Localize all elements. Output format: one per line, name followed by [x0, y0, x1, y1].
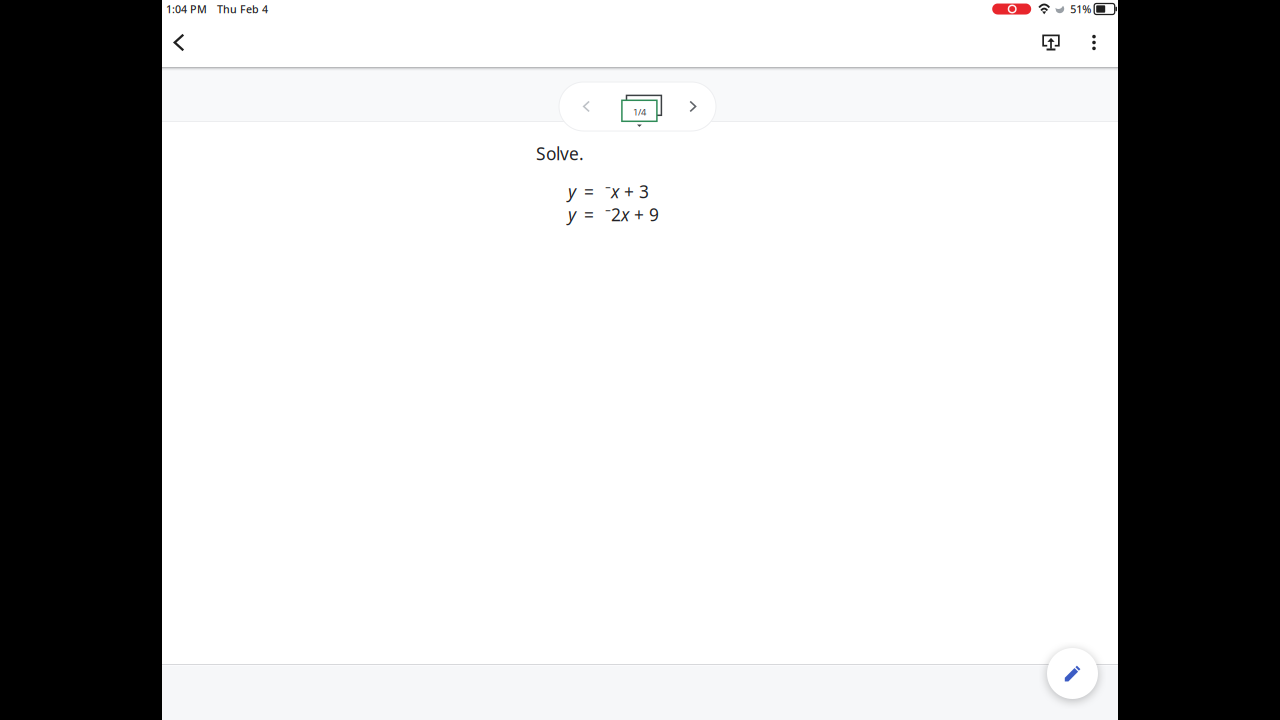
button[interactable]: Present on another screen: [1027, 18, 1075, 67]
button[interactable]: Edit: [1047, 648, 1098, 699]
button[interactable]: Previous slide: [559, 82, 614, 131]
staticText: Solve.: [536, 142, 584, 165]
staticText: 1/4: [633, 106, 646, 118]
staticText: 51%: [1070, 2, 1091, 16]
staticText: 1:04 PM: [166, 2, 207, 16]
button[interactable]: Slide 1 of 4: [614, 82, 670, 131]
staticText: y = ⁻x + 3: [568, 180, 649, 203]
button[interactable]: More options: [1075, 18, 1113, 67]
staticText: Thu Feb 4: [217, 2, 268, 16]
button[interactable]: Back: [162, 18, 196, 67]
staticText: y = ⁻2x + 9: [568, 203, 659, 226]
button[interactable]: Next slide: [670, 82, 716, 131]
